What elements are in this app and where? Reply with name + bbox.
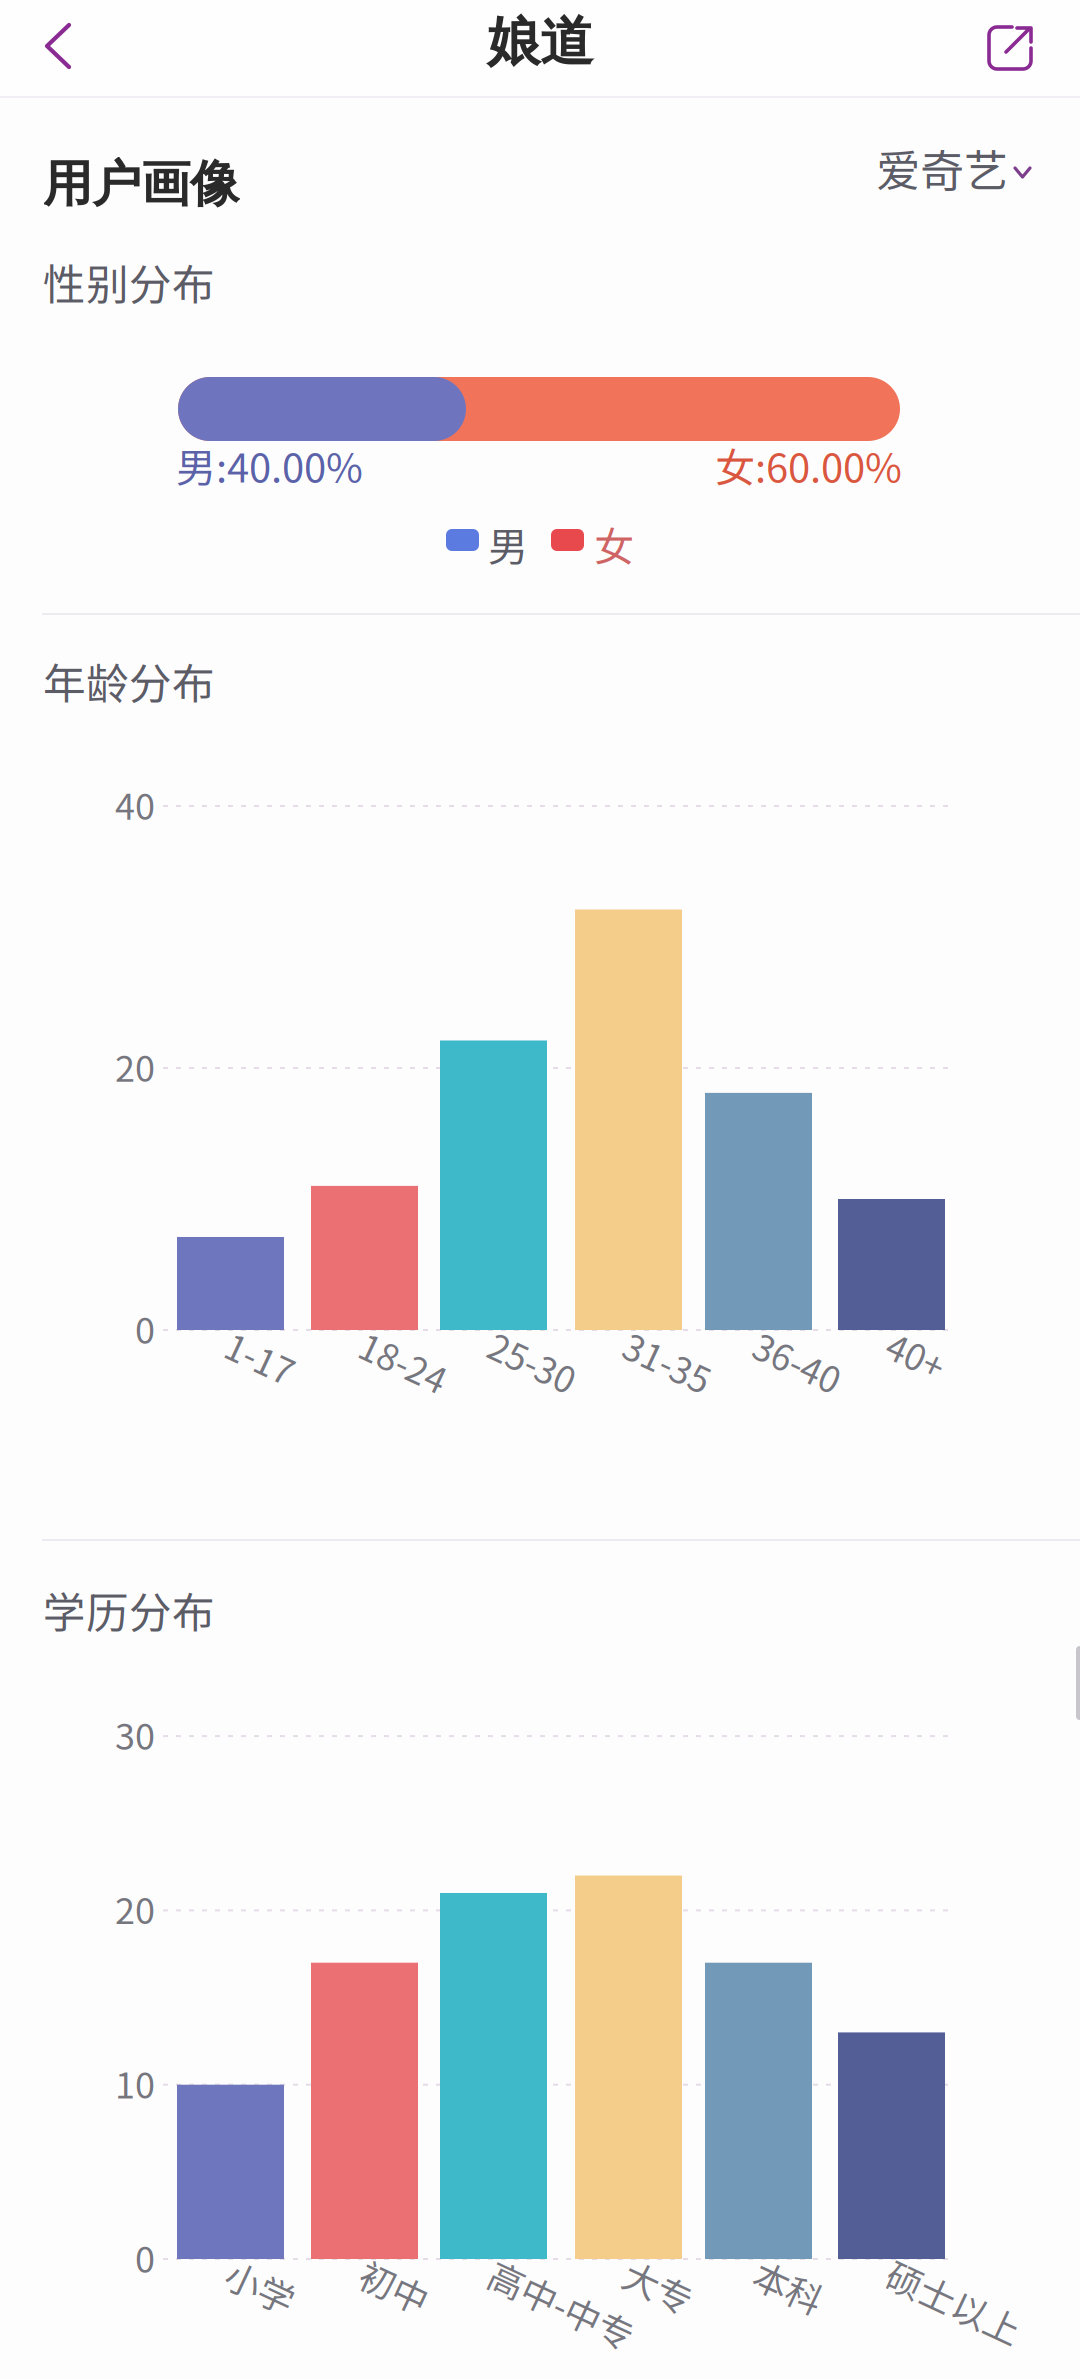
staticText: 娘道: [487, 8, 593, 76]
staticText: 36-40: [764, 1318, 856, 1370]
staticText: 20: [115, 1882, 155, 1934]
staticText: 40: [115, 778, 155, 830]
staticText: 31-35: [634, 1318, 726, 1370]
staticText: 女:60.00%: [715, 436, 902, 494]
staticText: 0: [135, 2231, 155, 2283]
staticText: 性别分布: [43, 251, 215, 313]
button[interactable]: 爱奇艺: [872, 128, 1062, 228]
staticText: 学历分布: [43, 1579, 215, 1641]
staticText: 18-24: [370, 1318, 462, 1370]
staticText: 男: [488, 515, 528, 573]
staticText: 20: [115, 1040, 155, 1092]
staticText: 初中: [370, 2247, 442, 2299]
staticText: 25-30: [499, 1318, 591, 1370]
staticText: 用户画像: [43, 153, 239, 215]
staticText: 年龄分布: [43, 650, 215, 712]
staticText: 本科: [764, 2247, 836, 2299]
staticText: 高中-中专: [499, 2247, 655, 2299]
staticText: 爱奇艺: [876, 136, 1008, 200]
button[interactable]: Share: [955, 0, 1065, 96]
staticText: 硕士以上: [897, 2247, 1041, 2299]
staticText: 男:40.00%: [176, 436, 363, 494]
staticText: 0: [135, 1302, 155, 1354]
staticText: 大专: [634, 2247, 706, 2299]
staticText: 40+: [897, 1318, 957, 1370]
staticText: 10: [115, 2057, 155, 2109]
button[interactable]: Back: [3, 0, 113, 94]
staticText: 女: [594, 515, 634, 573]
staticText: 小学: [236, 2247, 308, 2299]
staticText: 30: [115, 1708, 155, 1760]
staticText: 1-17: [236, 1318, 308, 1370]
